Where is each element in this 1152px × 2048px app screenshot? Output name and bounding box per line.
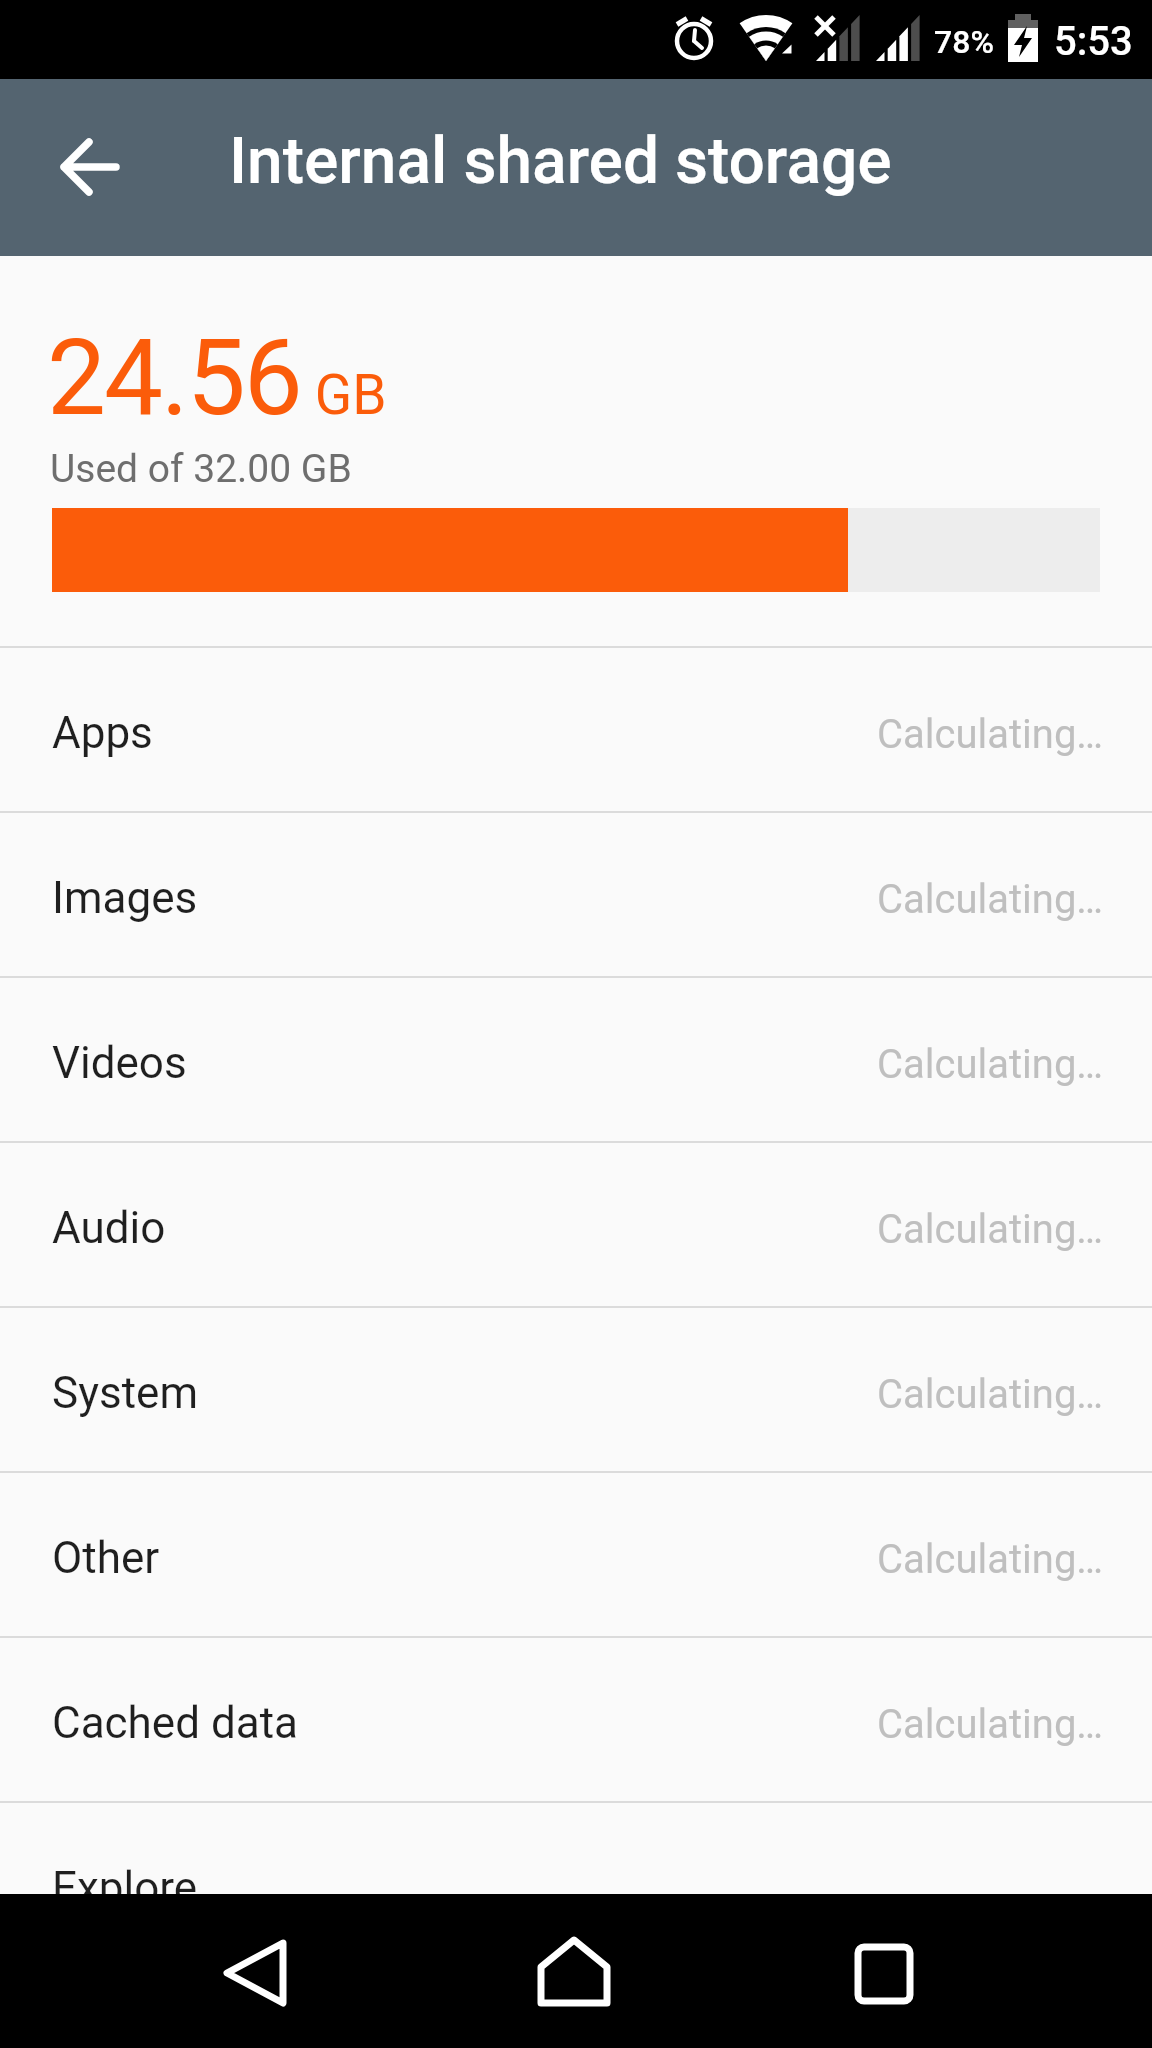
staticText: Audio [52, 1202, 166, 1254]
staticText: 24.56 GB [47, 317, 387, 440]
button[interactable]: Cached data [0, 1638, 1152, 1801]
button[interactable] [196, 1913, 316, 2033]
button[interactable]: Apps [0, 648, 1152, 811]
staticText: Calculating… [877, 1701, 1104, 1748]
staticText: Apps [52, 707, 153, 759]
staticText: Cached data [52, 1697, 298, 1749]
staticText: Calculating… [877, 1536, 1104, 1583]
staticText: Images [52, 872, 198, 924]
button[interactable] [516, 1913, 636, 2033]
button[interactable]: Audio [0, 1143, 1152, 1306]
button[interactable]: Explore [0, 1803, 1152, 1966]
button[interactable] [40, 117, 140, 217]
button[interactable]: Other [0, 1473, 1152, 1636]
staticText: Calculating… [877, 1041, 1104, 1088]
staticText: Calculating… [877, 1206, 1104, 1253]
staticText: Calculating… [877, 711, 1104, 758]
staticText: Videos [52, 1037, 187, 1089]
button[interactable]: Images [0, 813, 1152, 976]
button[interactable]: Videos [0, 978, 1152, 1141]
staticText: Internal shared storage [229, 124, 892, 199]
staticText: Calculating… [877, 876, 1104, 923]
button[interactable]: System [0, 1308, 1152, 1471]
staticText: 78% [934, 23, 994, 61]
staticText: Other [52, 1532, 160, 1584]
staticText: System [52, 1367, 198, 1419]
staticText: Explore [52, 1862, 198, 1914]
staticText: Calculating… [877, 1371, 1104, 1418]
button[interactable] [824, 1913, 944, 2033]
staticText: Used of 32.00 GB [50, 446, 352, 492]
staticText: 5:53 [1054, 18, 1133, 65]
